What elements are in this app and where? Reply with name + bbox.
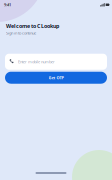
staticText: 9:41 [4,2,11,7]
button[interactable]: Enter mobile number [5,54,107,70]
staticText: Enter mobile number [18,59,55,64]
staticText: Sign in to continue [6,30,36,36]
staticText: Get OTP [48,75,63,80]
staticText: Welcome to C Lookup [6,22,59,29]
button[interactable]: Get OTP [5,72,107,84]
